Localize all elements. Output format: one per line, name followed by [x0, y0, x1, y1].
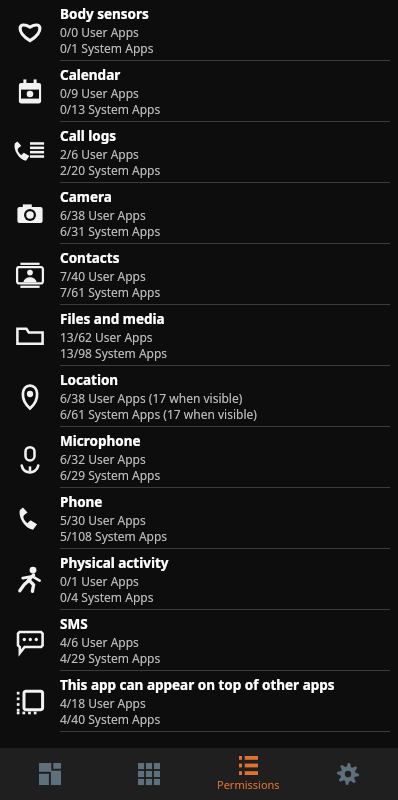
staticText: 0/13 System Apps [60, 101, 161, 117]
staticText: 4/18 User Apps [60, 695, 146, 711]
staticText: 4/29 System Apps [60, 650, 161, 666]
staticText: 6/32 User Apps [60, 451, 146, 467]
staticText: 0/4 System Apps [60, 589, 154, 605]
staticText: Permissions [217, 777, 280, 792]
staticText: Location [60, 371, 119, 389]
staticText: 0/0 User Apps [60, 24, 139, 40]
staticText: 6/31 System Apps [60, 223, 161, 239]
button[interactable]: Files and media [0, 305, 398, 366]
staticText: Calendar [60, 66, 121, 84]
button[interactable]: Phone [0, 488, 398, 549]
staticText: 7/61 System Apps [60, 284, 161, 300]
staticText: Files and media [60, 310, 165, 328]
staticText: 2/6 User Apps [60, 146, 139, 162]
staticText: Phone [60, 493, 103, 511]
button[interactable]: Settings [298, 748, 398, 800]
staticText: 6/61 System Apps (17 when visible) [60, 406, 257, 422]
staticText: 0/9 User Apps [60, 85, 139, 101]
staticText: SMS [60, 615, 88, 633]
staticText: 4/40 System Apps [60, 711, 161, 727]
button[interactable]: Microphone [0, 427, 398, 488]
staticText: 13/62 User Apps [60, 329, 153, 345]
staticText: Call logs [60, 127, 117, 145]
staticText: 0/1 User Apps [60, 573, 139, 589]
button[interactable]: Permissions [198, 748, 298, 800]
button[interactable]: Physical activity [0, 549, 398, 610]
staticText: 0/1 System Apps [60, 40, 154, 56]
button[interactable]: Call logs [0, 122, 398, 183]
staticText: 13/98 System Apps [60, 345, 168, 361]
staticText: 4/6 User Apps [60, 634, 139, 650]
staticText: 2/20 System Apps [60, 162, 161, 178]
staticText: Physical activity [60, 554, 169, 572]
staticText: 6/29 System Apps [60, 467, 161, 483]
staticText: 7/40 User Apps [60, 268, 146, 284]
button[interactable]: Body sensors [0, 0, 398, 61]
button[interactable]: This app can appear on top of other apps [0, 671, 398, 732]
staticText: Body sensors [60, 5, 149, 23]
button[interactable]: Calendar [0, 61, 398, 122]
staticText: 5/30 User Apps [60, 512, 146, 528]
staticText: This app can appear on top of other apps [60, 676, 335, 694]
staticText: 6/38 User Apps [60, 207, 146, 223]
staticText: 6/38 User Apps (17 when visible) [60, 390, 243, 406]
button[interactable]: SMS [0, 610, 398, 671]
staticText: Contacts [60, 249, 120, 267]
staticText: Camera [60, 188, 112, 206]
staticText: 5/108 System Apps [60, 528, 168, 544]
button[interactable]: Contacts [0, 244, 398, 305]
staticText: Microphone [60, 432, 141, 450]
button[interactable]: Apps [99, 748, 198, 800]
button[interactable]: Location [0, 366, 398, 427]
button[interactable]: Camera [0, 183, 398, 244]
button[interactable]: Dashboard [0, 748, 99, 800]
